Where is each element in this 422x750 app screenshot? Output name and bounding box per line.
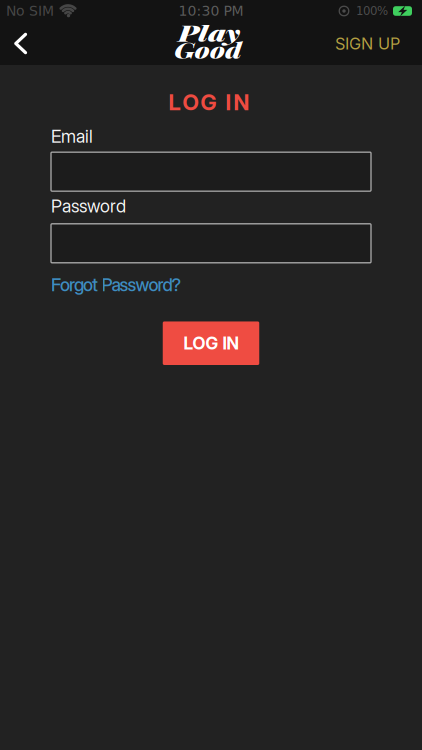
staticText: LOG IN — [168, 89, 249, 115]
button[interactable]: SIGN UP — [335, 34, 422, 53]
staticText: LOG IN — [183, 333, 238, 354]
button[interactable]: LOG IN — [163, 321, 259, 365]
staticText: 10:30 PM — [178, 3, 243, 19]
staticText: Good — [181, 36, 234, 64]
staticText: Play — [187, 19, 230, 47]
staticText: Email — [51, 125, 93, 147]
staticText: No SIM — [6, 3, 54, 19]
staticText: 100% — [356, 4, 388, 18]
staticText: SIGN UP — [335, 34, 400, 53]
staticText: Password? — [101, 274, 181, 295]
button[interactable]: Back — [0, 23, 27, 64]
staticText: Forgot — [51, 274, 98, 295]
staticText: Password — [51, 195, 126, 217]
button[interactable]: Forgot — [51, 274, 181, 295]
